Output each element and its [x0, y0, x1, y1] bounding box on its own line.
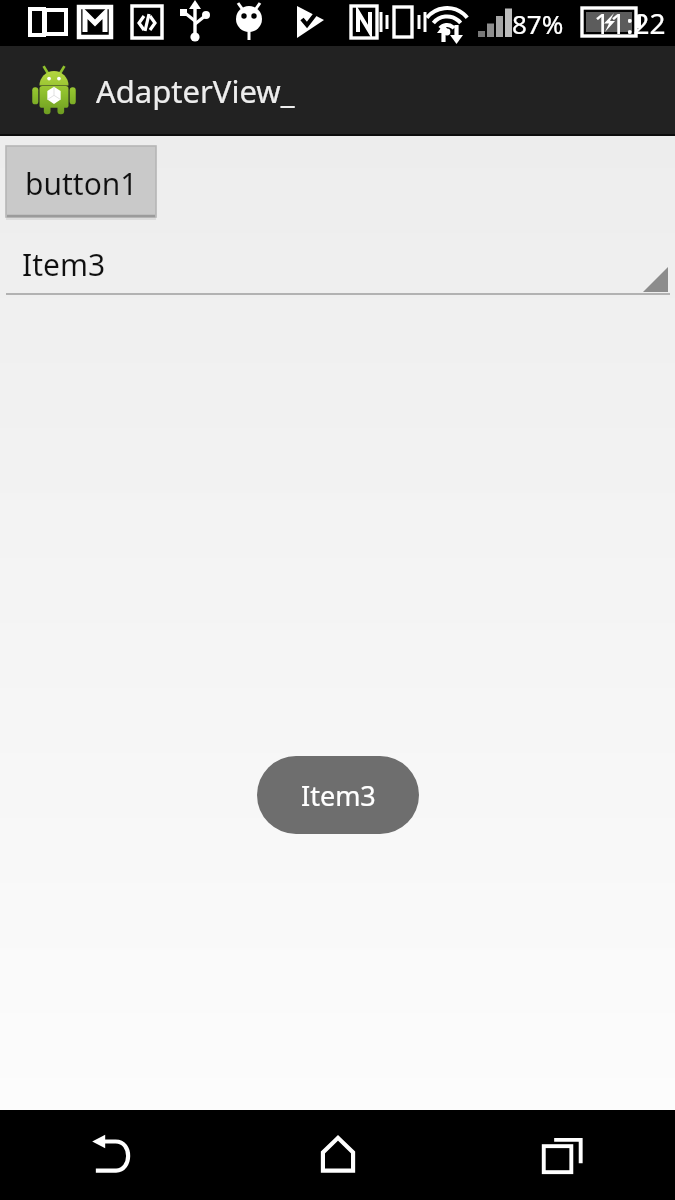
staticText: AdapterView_ — [96, 70, 295, 112]
button[interactable]: Recent apps — [450, 1110, 675, 1200]
button[interactable]: Home — [225, 1110, 450, 1200]
staticText: 87% — [512, 6, 564, 41]
button[interactable]: Back — [0, 1110, 225, 1200]
button[interactable]: button1 — [6, 146, 156, 220]
staticText: Item3 — [22, 244, 106, 285]
staticText: Item3 — [301, 777, 376, 814]
staticText: button1 — [25, 163, 138, 204]
button[interactable]: Item3 — [6, 240, 670, 296]
staticText: 11:22 — [594, 4, 666, 42]
